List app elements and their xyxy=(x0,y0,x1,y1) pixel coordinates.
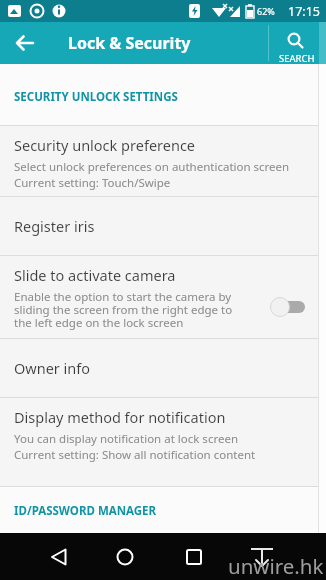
button[interactable]: Display method for notification xyxy=(0,398,326,486)
staticText: SECURITY UNLOCK SETTINGS xyxy=(14,89,178,105)
button[interactable] xyxy=(0,533,81,580)
staticText: Security unlock preference xyxy=(14,135,196,155)
button[interactable]: Security unlock preference xyxy=(0,126,326,196)
button[interactable] xyxy=(0,22,48,64)
button[interactable] xyxy=(270,296,306,318)
staticText: Enable the option to start the camera by… xyxy=(14,289,233,331)
button[interactable]: Owner info xyxy=(0,339,326,397)
staticText: Lock & Security xyxy=(68,32,191,54)
button[interactable]: Slide to activate camera xyxy=(0,256,326,338)
staticText: Owner info xyxy=(14,358,91,378)
button[interactable] xyxy=(162,533,244,580)
staticText: 17:15 xyxy=(288,3,320,20)
staticText: 62% xyxy=(257,5,275,17)
button[interactable] xyxy=(244,533,326,580)
button[interactable]: Register iris xyxy=(0,197,326,255)
staticText: Register iris xyxy=(14,216,95,236)
staticText: Select unlock preferences on authenticat… xyxy=(14,159,290,175)
staticText: ID/PASSWORD MANAGER xyxy=(14,503,157,519)
staticText: Current setting: Show all notification c… xyxy=(14,447,256,463)
staticText: Current setting: Touch/Swipe xyxy=(14,175,171,191)
button[interactable]: SEARCH xyxy=(268,22,326,64)
staticText: Slide to activate camera xyxy=(14,265,176,285)
button[interactable] xyxy=(81,533,162,580)
staticText: unwire.hk xyxy=(228,552,324,580)
staticText: SEARCH xyxy=(279,52,315,64)
staticText: Display method for notification xyxy=(14,407,226,427)
staticText: You can display notification at lock scr… xyxy=(14,431,238,447)
